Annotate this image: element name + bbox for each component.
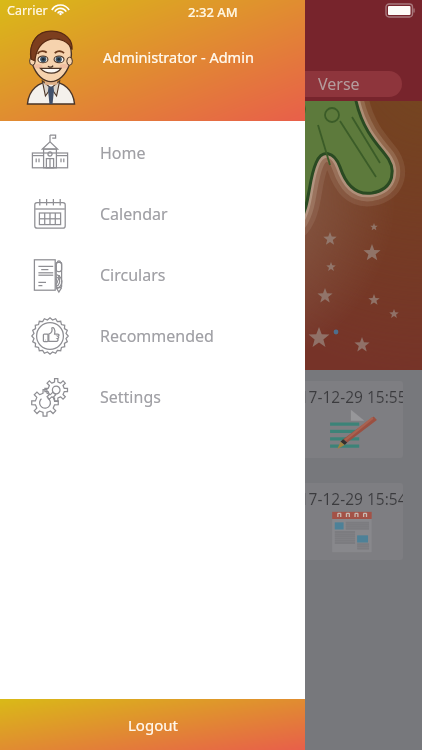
- staticText: Verse: [318, 73, 360, 95]
- button[interactable]: 2017-12-29 15:54: [10, 483, 403, 560]
- staticText: Administrator - Admin: [103, 47, 254, 67]
- button[interactable]: Recommended: [0, 305, 305, 366]
- staticText: Recommended: [100, 325, 214, 347]
- staticText: Carrier: [7, 2, 48, 19]
- staticText: 2:32 AM: [188, 3, 238, 21]
- button[interactable]: Calendar: [0, 183, 305, 244]
- staticText: Circulars: [100, 264, 166, 286]
- staticText: Calendar: [100, 203, 168, 225]
- other: Battery: [386, 4, 415, 17]
- staticText: 2017-12-29 15:55: [282, 386, 403, 407]
- button[interactable]: Circulars: [0, 244, 305, 305]
- button[interactable]: Home: [0, 122, 305, 183]
- button[interactable]: Verse: [200, 71, 402, 97]
- button[interactable]: 2017-12-29 15:55: [10, 381, 403, 458]
- staticText: Home: [100, 142, 146, 164]
- button[interactable]: Settings: [0, 366, 305, 427]
- button[interactable]: Logout: [0, 699, 305, 750]
- staticText: Settings: [100, 386, 161, 408]
- staticText: Logout: [128, 715, 178, 735]
- staticText: 2017-12-29 15:54: [282, 488, 403, 509]
